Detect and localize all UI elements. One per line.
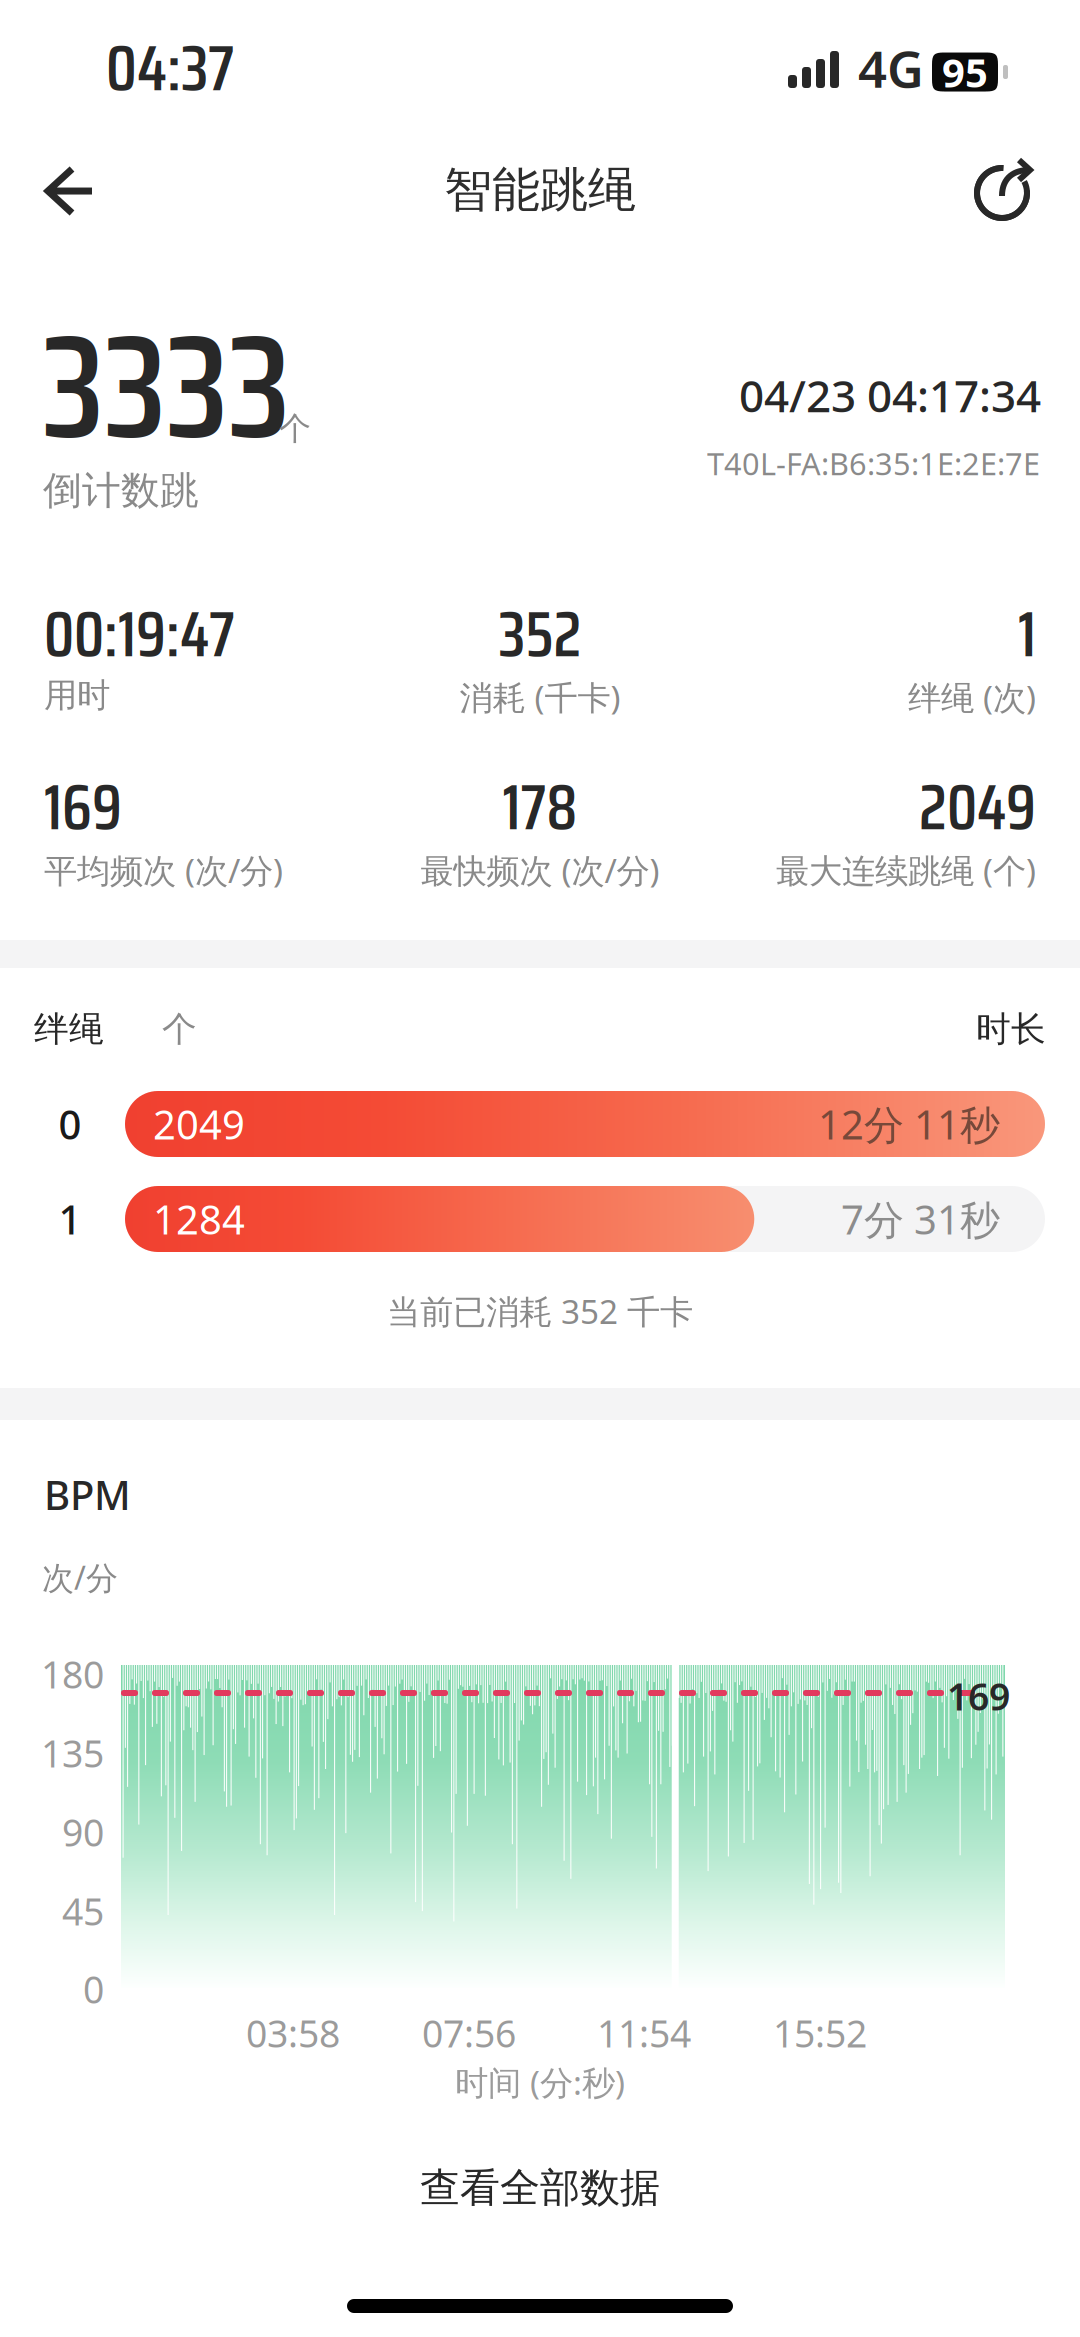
staticText: 178 xyxy=(502,758,577,857)
staticText: 绊绳 (次) xyxy=(908,675,1036,719)
staticText: T40L-FA:B6:35:1E:2E:7E xyxy=(707,443,1040,484)
staticText: 当前已消耗 352 千卡 xyxy=(387,1289,693,1333)
staticText: 2049 xyxy=(919,758,1036,857)
staticText: 0 xyxy=(58,1097,81,1150)
staticText: 04:37 xyxy=(106,18,234,118)
staticText: 90 xyxy=(62,1807,104,1857)
staticText: 最快频次 (次/分) xyxy=(420,848,659,892)
staticText: 消耗 (千卡) xyxy=(459,675,620,719)
button[interactable]: Back xyxy=(18,142,122,240)
staticText: 查看全部数据 xyxy=(420,2163,660,2212)
staticText: 个 xyxy=(279,409,311,448)
staticText: 03:58 xyxy=(246,2008,340,2058)
staticText: 1 xyxy=(1018,585,1036,684)
staticText: 135 xyxy=(41,1728,104,1778)
staticText: 次/分 xyxy=(42,1556,118,1598)
staticText: 2049 xyxy=(153,1097,245,1150)
staticText: 时间 (分:秒) xyxy=(455,2060,625,2104)
staticText: 12分 11秒 xyxy=(818,1097,1000,1150)
staticText: 智能跳绳 xyxy=(444,160,636,219)
staticText: BPM xyxy=(44,1468,131,1521)
staticText: 169 xyxy=(947,1671,1010,1721)
staticText: 95 xyxy=(942,45,988,98)
staticText: 07:56 xyxy=(422,2008,516,2058)
staticText: 11:54 xyxy=(597,2008,691,2058)
staticText: 04/23 04:17:34 xyxy=(739,366,1041,424)
staticText: 4G xyxy=(858,34,924,102)
staticText: 15:52 xyxy=(773,2008,867,2058)
staticText: 45 xyxy=(62,1886,104,1936)
staticText: 最大连续跳绳 (个) xyxy=(776,848,1036,892)
staticText: 时长 xyxy=(976,1008,1046,1051)
staticText: 3333 xyxy=(42,272,290,501)
staticText: 352 xyxy=(498,585,581,684)
staticText: 个 xyxy=(162,1008,197,1051)
staticText: 7分 31秒 xyxy=(841,1192,1000,1245)
staticText: 平均频次 (次/分) xyxy=(44,848,283,892)
button[interactable]: Share xyxy=(952,142,1056,240)
button[interactable]: 查看全部数据 xyxy=(0,2140,1080,2236)
staticText: 1 xyxy=(58,1192,81,1245)
staticText: 1284 xyxy=(153,1192,245,1245)
staticText: 0 xyxy=(83,1964,104,2014)
staticText: 绊绳 xyxy=(34,1008,104,1051)
staticText: 169 xyxy=(44,758,122,857)
staticText: 用时 xyxy=(44,675,110,716)
staticText: 00:19:47 xyxy=(44,585,235,684)
staticText: 倒计数跳 xyxy=(43,467,199,514)
staticText: 180 xyxy=(41,1649,104,1699)
